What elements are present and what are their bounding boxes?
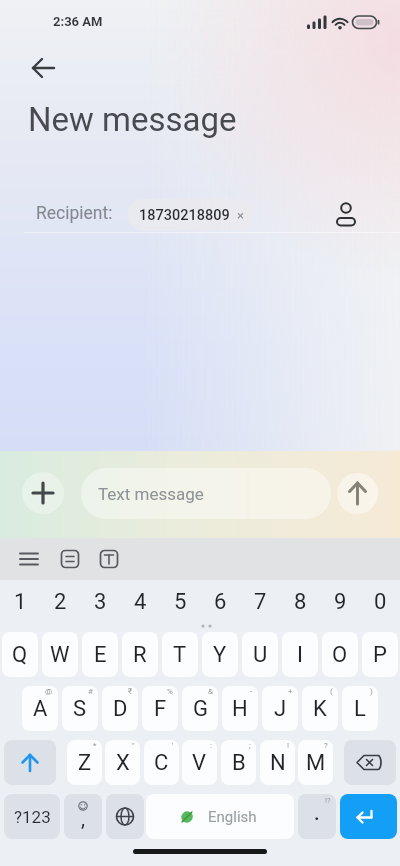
staticText: @ [45, 687, 53, 696]
button[interactable]: 9 [320, 580, 360, 624]
staticText: English [208, 808, 257, 826]
staticText: " [132, 741, 135, 750]
button[interactable]: K [302, 686, 338, 731]
button[interactable]: B [221, 740, 256, 785]
button[interactable]: 7 [240, 580, 280, 624]
staticText: 2:36 AM [53, 14, 103, 29]
staticText: . [314, 801, 320, 824]
staticText: 6 [214, 589, 227, 615]
button[interactable]: 4 [120, 580, 160, 624]
button[interactable]: 2 [40, 580, 80, 624]
staticText: ?123 [14, 807, 51, 827]
button[interactable]: 18730218809 [127, 199, 254, 231]
staticText: V [192, 750, 207, 776]
staticText: , [81, 807, 85, 830]
button[interactable] [15, 545, 43, 573]
staticText: ? [324, 741, 328, 750]
button[interactable]: 1 [0, 580, 40, 624]
staticText: S [73, 696, 87, 722]
button[interactable]: Q [2, 632, 38, 677]
staticText: A [33, 696, 48, 722]
button[interactable]: 0 [360, 580, 400, 624]
button[interactable] [56, 545, 84, 573]
staticText: K [313, 696, 327, 722]
staticText: * [93, 741, 97, 750]
button[interactable]: M [298, 740, 333, 785]
button[interactable] [95, 545, 123, 573]
button[interactable]: 5 [160, 580, 200, 624]
staticText: L [354, 696, 366, 722]
staticText: ' [172, 741, 174, 750]
staticText: Y [213, 642, 227, 668]
staticText: D [113, 696, 128, 722]
button[interactable]: N [260, 740, 295, 785]
button[interactable]: O [322, 632, 358, 677]
staticText: : [210, 741, 212, 750]
staticText: ; [249, 741, 251, 750]
button[interactable]: English [146, 794, 294, 839]
button[interactable]: . [298, 794, 336, 839]
staticText: !? [325, 796, 331, 805]
button[interactable] [22, 472, 64, 514]
staticText: W [50, 642, 70, 668]
button[interactable]: L [342, 686, 378, 731]
staticText: 3 [94, 589, 107, 615]
staticText: ₹ [128, 687, 133, 696]
staticText: F [154, 696, 167, 722]
staticText: + [288, 687, 293, 696]
button[interactable]: A [22, 686, 58, 731]
button[interactable]: D [102, 686, 138, 731]
staticText: O [332, 642, 348, 668]
button[interactable] [4, 740, 56, 785]
button[interactable] [25, 52, 59, 84]
staticText: T [173, 642, 187, 668]
staticText: New message [28, 100, 237, 139]
button[interactable]: Z [67, 740, 102, 785]
staticText: H [232, 696, 248, 722]
staticText: ) [370, 687, 373, 696]
button[interactable]: Y [202, 632, 238, 677]
staticText: # [88, 687, 93, 696]
button[interactable]: S [62, 686, 98, 731]
button[interactable]: U [242, 632, 278, 677]
button[interactable]: W [42, 632, 78, 677]
button[interactable]: Text message [81, 468, 331, 519]
button[interactable]: 6 [200, 580, 240, 624]
button[interactable]: V [182, 740, 217, 785]
staticText: 5 [174, 589, 187, 615]
button[interactable]: J [262, 686, 298, 731]
staticText: P [373, 642, 387, 668]
button[interactable] [330, 198, 364, 232]
button[interactable]: F [142, 686, 178, 731]
button[interactable] [344, 740, 396, 785]
staticText: 1 [14, 589, 27, 615]
button[interactable]: T [162, 632, 198, 677]
staticText: B [232, 750, 246, 776]
staticText: Z [78, 750, 92, 776]
staticText: 8 [294, 589, 307, 615]
button[interactable]: 3 [80, 580, 120, 624]
staticText: 4 [134, 589, 147, 615]
button[interactable]: G [182, 686, 218, 731]
staticText: N [270, 750, 286, 776]
button[interactable]: X [105, 740, 140, 785]
button[interactable]: C [144, 740, 179, 785]
button[interactable]: E [82, 632, 118, 677]
staticText: Recipient: [36, 203, 113, 224]
button[interactable]: , [64, 794, 102, 839]
button[interactable]: R [122, 632, 158, 677]
staticText: 0 [374, 589, 387, 615]
button[interactable]: P [362, 632, 398, 677]
staticText: % [167, 687, 173, 696]
staticText: I [297, 642, 303, 668]
button[interactable] [340, 794, 397, 839]
staticText: ( [330, 687, 333, 696]
staticText: 18730218809 [139, 207, 230, 224]
staticText: E [94, 642, 107, 668]
button[interactable] [337, 473, 378, 514]
button[interactable] [106, 794, 144, 839]
button[interactable]: 8 [280, 580, 320, 624]
button[interactable]: ?123 [4, 794, 60, 839]
button[interactable]: I [282, 632, 318, 677]
button[interactable]: H [222, 686, 258, 731]
